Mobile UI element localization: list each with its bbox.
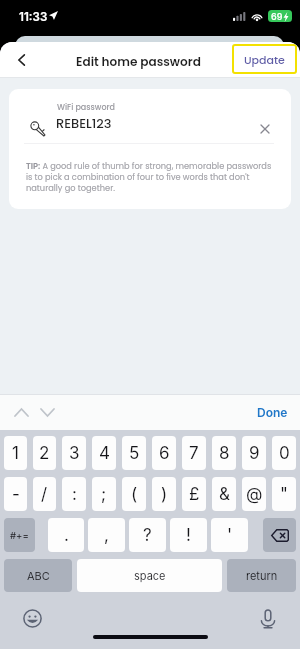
staticText: 69: [271, 11, 283, 22]
staticText: 8: [219, 443, 230, 464]
staticText: 1: [12, 443, 19, 464]
staticText: (: [131, 484, 138, 505]
button[interactable]: ?: [129, 518, 166, 552]
staticText: ;: [101, 484, 107, 505]
staticText: 4: [99, 443, 110, 464]
button[interactable]: £: [182, 477, 206, 511]
staticText: 2: [39, 443, 50, 464]
button[interactable]: Backspace: [263, 518, 296, 552]
staticText: ?: [143, 525, 152, 546]
button[interactable]: Dictation: [254, 605, 282, 633]
staticText: #+=: [10, 530, 29, 541]
staticText: REBEL123: [56, 114, 112, 132]
button[interactable]: ;: [92, 477, 116, 511]
button[interactable]: 1: [4, 436, 27, 470]
button[interactable]: 5: [122, 436, 146, 470]
button[interactable]: @: [242, 477, 266, 511]
staticText: ': [227, 525, 233, 546]
staticText: return: [246, 569, 278, 582]
button[interactable]: ": [272, 477, 296, 511]
button[interactable]: 3: [62, 436, 86, 470]
button[interactable]: 6: [152, 436, 176, 470]
staticText: 6: [159, 443, 170, 464]
staticText: 3: [69, 443, 80, 464]
button[interactable]: Back: [6, 42, 36, 78]
button[interactable]: &: [212, 477, 236, 511]
button[interactable]: Done: [245, 398, 300, 427]
staticText: space: [134, 569, 166, 582]
staticText: :: [72, 484, 77, 505]
button[interactable]: Clear password: [253, 117, 277, 141]
staticText: /: [41, 484, 48, 505]
staticText: Update: [244, 52, 285, 67]
button[interactable]: return: [227, 559, 296, 592]
staticText: 0: [279, 443, 290, 464]
button[interactable]: 2: [33, 436, 56, 470]
staticText: !: [186, 525, 191, 546]
button[interactable]: ): [152, 477, 176, 511]
staticText: -: [12, 484, 20, 505]
button[interactable]: space: [77, 559, 222, 592]
staticText: £: [189, 484, 200, 505]
staticText: ABC: [27, 569, 50, 582]
button[interactable]: !: [170, 518, 207, 552]
staticText: Edit home password: [76, 53, 201, 70]
staticText: 9: [249, 443, 260, 464]
button[interactable]: ': [211, 518, 248, 552]
button[interactable]: 4: [92, 436, 116, 470]
button[interactable]: -: [4, 477, 27, 511]
staticText: @: [246, 484, 263, 505]
other: Backspace: [263, 518, 296, 552]
staticText: &: [219, 484, 230, 505]
staticText: 7: [189, 443, 199, 464]
staticText: ": [280, 484, 288, 505]
button[interactable]: #+=: [4, 518, 35, 552]
button[interactable]: ABC: [4, 559, 72, 592]
staticText: 11:33: [19, 10, 48, 24]
staticText: 5: [129, 443, 140, 464]
button[interactable]: (: [122, 477, 146, 511]
staticText: .: [64, 525, 69, 546]
button[interactable]: :: [62, 477, 86, 511]
button[interactable]: Emoji keyboard: [18, 604, 46, 632]
staticText: Done: [257, 405, 288, 420]
button[interactable]: Next field: [34, 399, 60, 425]
staticText: TIP: A good rule of thumb for strong, me…: [26, 160, 276, 194]
button[interactable]: /: [33, 477, 56, 511]
staticText: WiFi password: [57, 102, 116, 113]
button[interactable]: Previous field: [8, 399, 34, 425]
staticText: ,: [104, 525, 109, 546]
button[interactable]: 7: [182, 436, 206, 470]
button[interactable]: 0: [272, 436, 296, 470]
staticText: ): [161, 484, 168, 505]
button[interactable]: 9: [242, 436, 266, 470]
button[interactable]: ,: [88, 518, 125, 552]
button[interactable]: .: [48, 518, 84, 552]
button[interactable]: 8: [212, 436, 236, 470]
button[interactable]: Update: [232, 44, 297, 74]
